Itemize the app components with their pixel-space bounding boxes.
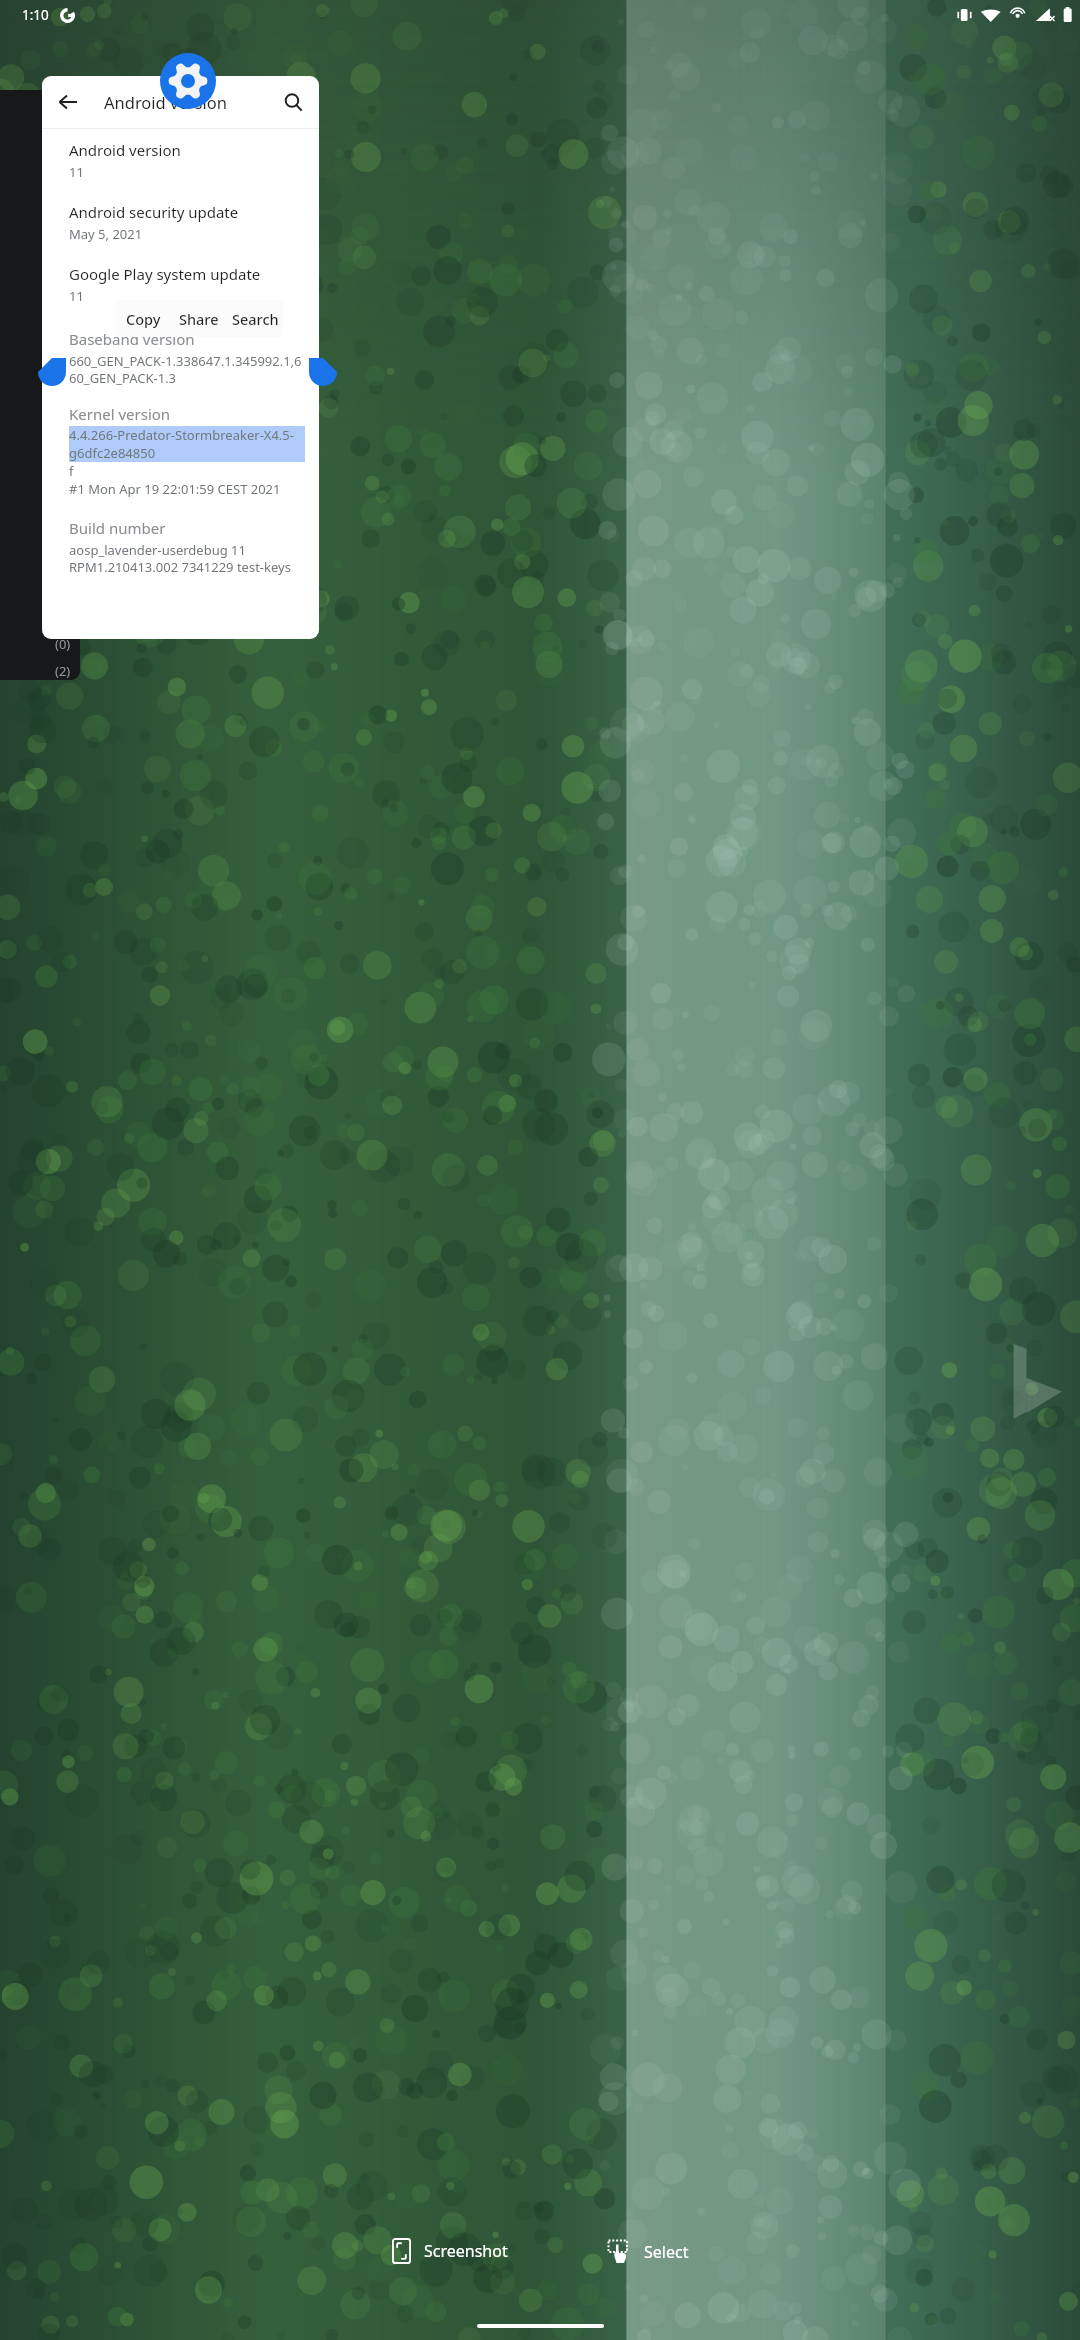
staticText: f xyxy=(69,462,74,480)
button[interactable]: Android security update xyxy=(42,202,319,243)
staticText: (2) xyxy=(55,527,71,545)
button[interactable]: Select xyxy=(596,2231,699,2272)
button[interactable]: Settings app icon xyxy=(160,53,216,109)
button[interactable]: Back xyxy=(42,76,319,128)
staticText: 11 xyxy=(69,163,84,181)
staticText: Select xyxy=(644,2241,689,2263)
staticText: 660_GEN_PACK-1.338647.1.345992.1,660_GEN… xyxy=(69,352,305,387)
staticText: (2) xyxy=(55,491,71,509)
staticText: (0) xyxy=(55,383,71,401)
button[interactable]: (0) xyxy=(0,90,80,680)
staticText: aosp_lavender-userdebug 11 RPM1.210413.0… xyxy=(69,541,305,576)
staticText: (1) xyxy=(55,563,71,581)
button[interactable]: Search xyxy=(267,76,319,128)
staticText: (0) xyxy=(55,419,71,437)
staticText: May 5, 2021 xyxy=(69,225,143,243)
staticText: Copy xyxy=(126,309,161,329)
button[interactable]: Google Play system update xyxy=(42,264,319,305)
staticText: 1:10 xyxy=(22,6,49,24)
staticText: Kernel version xyxy=(69,404,171,424)
button[interactable]: Build number xyxy=(42,518,319,576)
button[interactable]: Screenshot xyxy=(382,2230,518,2272)
staticText: Baseband version xyxy=(69,329,195,349)
staticText: Google Play system update xyxy=(69,264,261,284)
staticText: Android security update xyxy=(69,202,239,222)
staticText: (0) xyxy=(55,275,71,293)
staticText: Android version xyxy=(69,140,181,160)
staticText: (0) xyxy=(55,635,71,653)
button[interactable]: Kernel version xyxy=(42,404,319,498)
staticText: Screenshot xyxy=(424,2240,508,2262)
staticText: 11 xyxy=(69,287,84,305)
staticText: #1 Mon Apr 19 22:01:59 CEST 2021 xyxy=(69,480,281,498)
button[interactable]: Copy xyxy=(115,300,171,337)
button[interactable]: Search xyxy=(227,300,283,337)
staticText: Search xyxy=(232,309,279,329)
button[interactable]: Baseband version xyxy=(42,329,319,387)
button[interactable]: Share xyxy=(171,300,227,337)
staticText: Android version xyxy=(104,91,227,113)
button[interactable]: Android version xyxy=(42,140,319,181)
staticText: (0) xyxy=(55,455,71,473)
staticText: (2) xyxy=(55,662,71,680)
staticText: Share xyxy=(179,309,219,329)
staticText: (3) xyxy=(55,347,71,365)
staticText: 4.4.266-Predator-Stormbreaker-X4.5-g6dfc… xyxy=(69,426,305,462)
staticText: Build number xyxy=(69,518,166,538)
button[interactable]: Back xyxy=(42,76,94,128)
